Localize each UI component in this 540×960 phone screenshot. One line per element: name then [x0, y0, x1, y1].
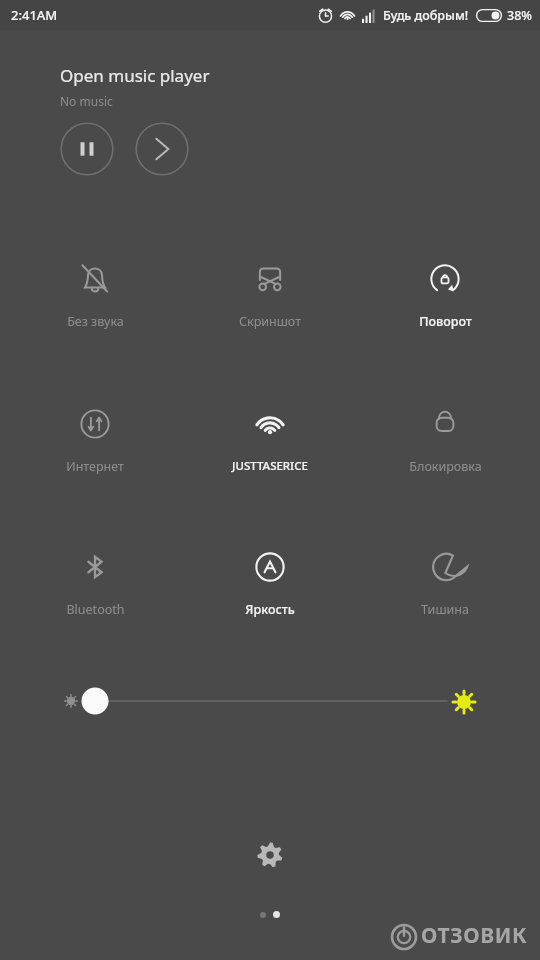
button[interactable]: Поворот	[365, 253, 525, 334]
staticText: 2:41AM	[11, 6, 58, 24]
button[interactable]: Яркость	[190, 541, 350, 622]
staticText: Интернет	[66, 458, 124, 475]
button[interactable]: Open music player	[60, 64, 210, 87]
staticText: Яркость	[245, 601, 295, 618]
button[interactable]: Brightness	[0, 678, 540, 724]
staticText: Скриншот	[239, 313, 301, 330]
button[interactable]: JUSTTASERICE	[190, 398, 350, 478]
button[interactable]: Без звука	[15, 253, 175, 334]
button[interactable]: Pause	[60, 122, 114, 176]
button[interactable]: Скриншот	[190, 253, 350, 334]
staticText: Тишина	[421, 601, 469, 618]
staticText: 38%	[507, 7, 532, 24]
button[interactable]: Next	[135, 122, 189, 176]
staticText: Bluetooth	[66, 601, 125, 618]
staticText: JUSTTASERICE	[232, 458, 308, 474]
staticText: Блокировка	[409, 458, 482, 475]
button[interactable]: Settings	[247, 832, 293, 878]
button[interactable]: Тишина	[365, 541, 525, 622]
staticText: Без звука	[67, 313, 124, 330]
staticText: No music	[60, 93, 113, 109]
button[interactable]: Блокировка	[365, 398, 525, 479]
staticText: Будь добрым!	[383, 7, 469, 24]
button[interactable]: Bluetooth	[15, 541, 175, 622]
staticText: ОТЗОВИК	[421, 921, 528, 950]
button[interactable]: Интернет	[15, 398, 175, 479]
staticText: Поворот	[419, 313, 472, 330]
